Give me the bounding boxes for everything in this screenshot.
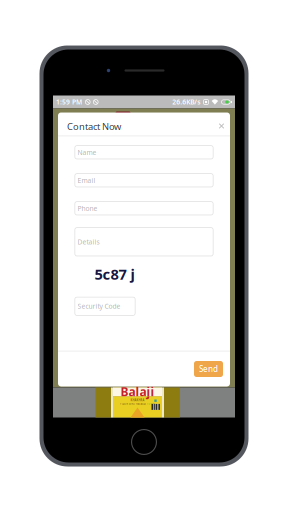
button[interactable]: Email bbox=[74, 173, 213, 187]
staticText: Phone bbox=[77, 204, 97, 213]
staticText: Details bbox=[77, 237, 99, 246]
staticText: Send bbox=[199, 364, 218, 374]
staticText: Security Code bbox=[77, 302, 120, 311]
staticText: Name bbox=[77, 148, 96, 157]
staticText: 26.6KB/s bbox=[172, 98, 200, 106]
staticText: Email bbox=[77, 176, 95, 185]
staticText: 1:59 PM bbox=[56, 98, 82, 106]
button[interactable]: Close bbox=[213, 117, 226, 130]
button[interactable]: Details bbox=[74, 227, 213, 256]
button[interactable]: Phone bbox=[74, 201, 213, 215]
button[interactable]: Name bbox=[74, 145, 213, 159]
staticText: KHAKHRA bbox=[130, 398, 144, 402]
staticText: PLAIN AND MASALA 175g bbox=[120, 402, 155, 405]
staticText: 5c87 j bbox=[94, 264, 134, 284]
staticText: Contact Now bbox=[67, 120, 121, 133]
button[interactable]: Send bbox=[194, 361, 223, 377]
staticText: Balaji bbox=[120, 383, 154, 399]
button[interactable]: Security Code bbox=[74, 297, 135, 316]
